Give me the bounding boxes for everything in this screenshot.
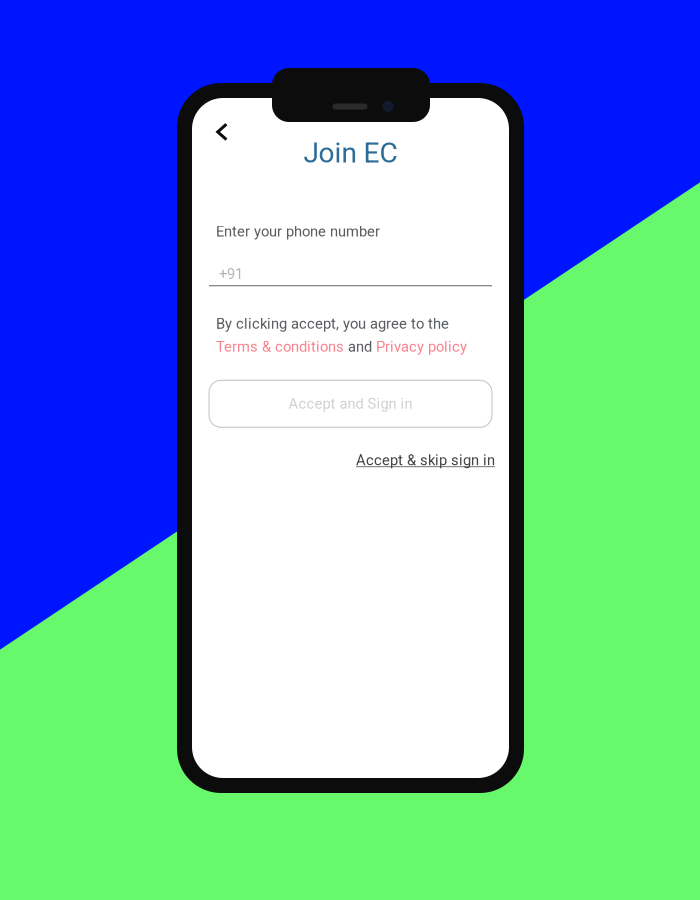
staticText: and — [344, 338, 376, 355]
staticText: Accept & skip sign in — [356, 452, 495, 469]
button[interactable]: Back — [206, 116, 238, 148]
button[interactable]: Accept and Sign in — [209, 380, 492, 427]
staticText: By clicking accept, you agree to the — [216, 315, 449, 332]
staticText: +91 — [219, 265, 243, 283]
button[interactable]: Terms & conditions — [216, 338, 344, 355]
staticText: Privacy policy — [376, 338, 467, 355]
staticText: Enter your phone number — [216, 223, 380, 240]
button[interactable]: Privacy policy — [376, 338, 467, 355]
staticText: Join EC — [303, 137, 397, 169]
staticText: Terms & conditions — [216, 338, 344, 355]
button[interactable]: Accept & skip sign in — [356, 452, 495, 469]
staticText: Accept and Sign in — [288, 395, 412, 412]
